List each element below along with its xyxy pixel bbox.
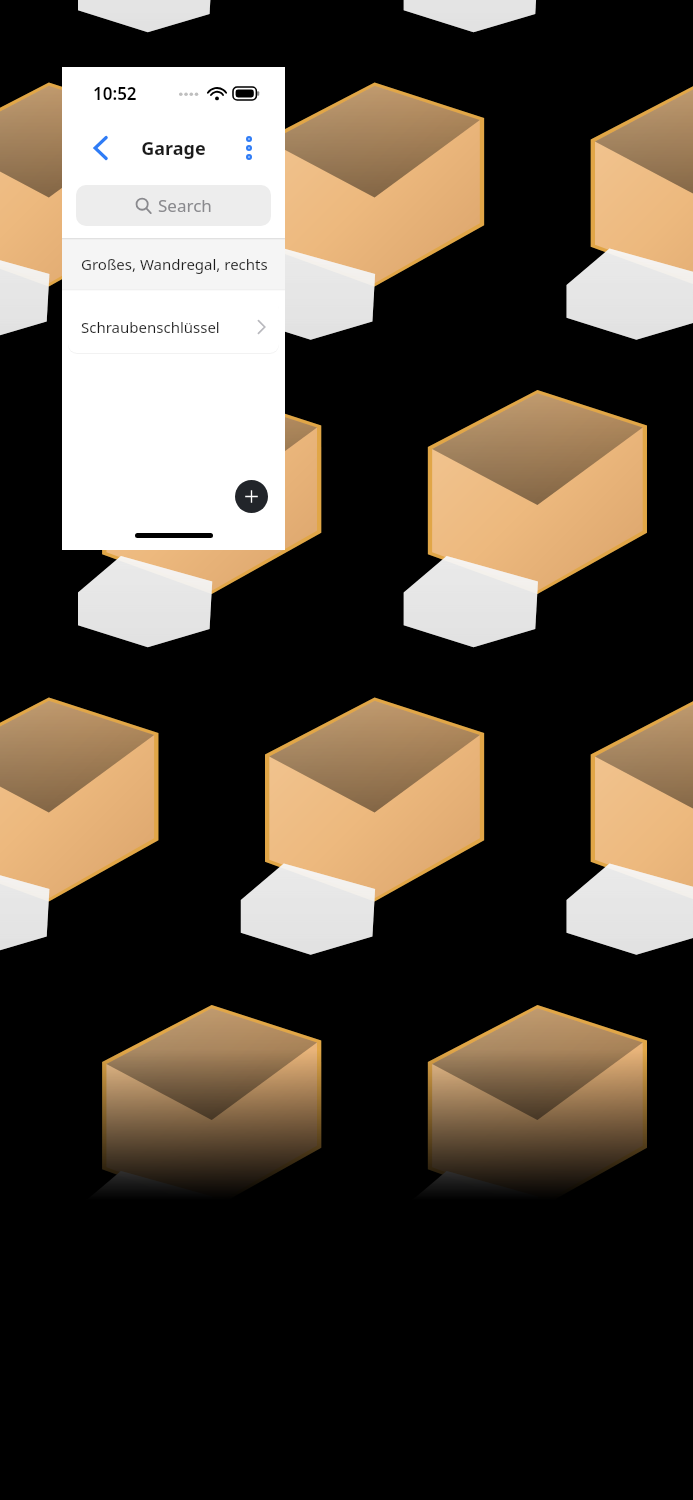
- staticText: 10:52: [93, 82, 137, 105]
- button[interactable]: Back: [78, 126, 122, 170]
- staticText: Search: [158, 194, 212, 217]
- button[interactable]: Search: [76, 185, 271, 226]
- button[interactable]: Add item: [235, 480, 268, 513]
- button[interactable]: More options: [227, 126, 271, 170]
- button[interactable]: Großes, Wandregal, rechts: [62, 238, 285, 289]
- staticText: Schraubenschlüssel: [81, 317, 220, 337]
- staticText: Garage: [141, 136, 206, 161]
- button[interactable]: Schraubenschlüssel: [68, 300, 279, 353]
- staticText: Großes, Wandregal, rechts: [81, 254, 268, 274]
